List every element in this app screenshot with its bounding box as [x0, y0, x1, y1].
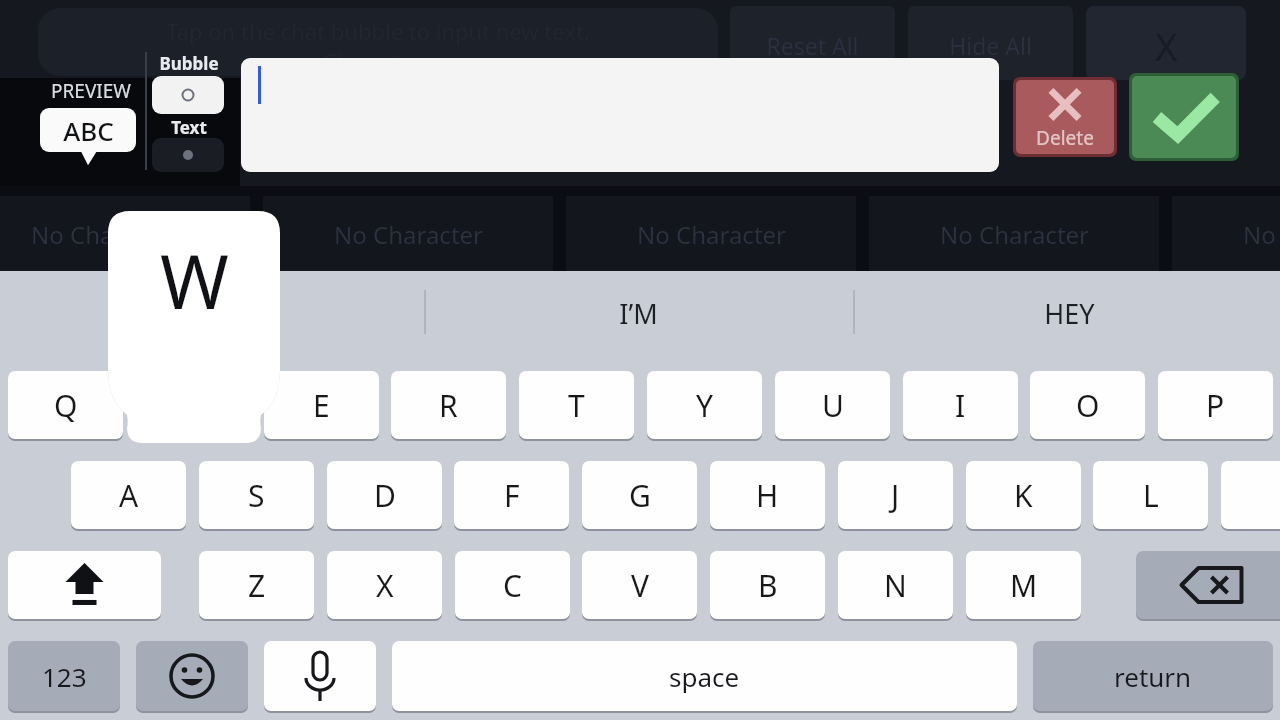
staticText: I [955, 385, 966, 426]
button[interactable]: S [199, 461, 314, 529]
button[interactable] [263, 196, 553, 274]
staticText: X [376, 565, 394, 606]
button[interactable]: P [1158, 371, 1273, 439]
button[interactable] [855, 279, 1280, 345]
button[interactable] [1172, 196, 1280, 274]
staticText: H [756, 475, 779, 516]
staticText: W [160, 230, 229, 331]
button[interactable]: H [710, 461, 825, 529]
button[interactable]: L [1093, 461, 1208, 529]
button[interactable] [730, 6, 895, 80]
staticText: No Character [334, 218, 483, 251]
button[interactable]: K [966, 461, 1081, 529]
button[interactable]: O [1030, 371, 1145, 439]
staticText: No Character [31, 218, 180, 251]
button[interactable]: J [838, 461, 953, 529]
button[interactable]: W [108, 225, 280, 335]
staticText: return [1114, 659, 1192, 694]
button[interactable]: Confirm [1132, 76, 1236, 158]
staticText: X [1155, 20, 1178, 68]
button[interactable] [424, 279, 853, 345]
button[interactable]: Z [199, 551, 314, 619]
button[interactable]: 123 [8, 641, 120, 711]
button[interactable] [0, 196, 250, 274]
staticText: D [374, 475, 396, 516]
button[interactable]: M [966, 551, 1081, 619]
staticText: C [503, 565, 522, 606]
button[interactable]: B [710, 551, 825, 619]
staticText: P [1206, 385, 1225, 426]
button[interactable]: Voice input [264, 641, 376, 711]
staticText: Characters [322, 46, 434, 76]
button[interactable] [869, 196, 1159, 274]
button[interactable]: I [903, 371, 1018, 439]
staticText: 123 [42, 659, 87, 694]
button[interactable]: E [264, 371, 379, 439]
button[interactable] [1016, 80, 1114, 154]
staticText: O [1076, 385, 1100, 426]
staticText: J [891, 475, 900, 516]
button[interactable] [40, 108, 136, 152]
button[interactable]: F [454, 461, 569, 529]
button[interactable]: V [582, 551, 697, 619]
button[interactable]: Emoji [136, 641, 248, 711]
button[interactable] [908, 6, 1073, 80]
button[interactable]: G [582, 461, 697, 529]
button[interactable]: X [327, 551, 442, 619]
button[interactable]: Q [8, 371, 123, 439]
staticText: Delete [1036, 125, 1094, 151]
staticText: S [248, 475, 265, 516]
button[interactable]: U [775, 371, 890, 439]
staticText: PREVIEW [51, 78, 131, 104]
button[interactable]: space [392, 641, 1017, 711]
button[interactable] [241, 58, 999, 172]
button[interactable]: Backspace [1136, 551, 1280, 619]
staticText: Y [696, 385, 713, 426]
staticText: HEY [1044, 295, 1095, 331]
staticText: N [884, 565, 907, 606]
staticText: T [568, 385, 585, 426]
staticText: ABC [63, 113, 114, 148]
staticText: Bubble [159, 52, 219, 75]
staticText: space [669, 659, 740, 694]
staticText: U [822, 385, 844, 426]
staticText: L [1143, 475, 1159, 516]
staticText: Reset All [766, 30, 859, 61]
staticText: Q [54, 385, 78, 426]
staticText: E [313, 385, 330, 426]
staticText: Text [171, 116, 207, 139]
staticText: F [504, 475, 520, 516]
staticText: No Character [1243, 218, 1280, 251]
staticText: G [629, 475, 651, 516]
button[interactable]: Y [647, 371, 762, 439]
button[interactable] [566, 196, 856, 274]
staticText: I’M [619, 295, 658, 331]
staticText: B [758, 565, 778, 606]
staticText: Hide All [949, 30, 1032, 61]
staticText: No Character [940, 218, 1089, 251]
button[interactable]: Close [1086, 6, 1246, 80]
staticText: A [119, 475, 139, 516]
button[interactable]: C [455, 551, 570, 619]
button[interactable]: Shift [8, 551, 161, 619]
button[interactable]: return [1033, 641, 1273, 711]
button[interactable]: N [838, 551, 953, 619]
button[interactable] [1221, 461, 1280, 529]
staticText: M [1010, 565, 1038, 606]
button[interactable]: D [327, 461, 442, 529]
button[interactable] [152, 76, 224, 114]
button[interactable] [152, 138, 224, 172]
button[interactable]: T [519, 371, 634, 439]
staticText: Z [248, 565, 266, 606]
staticText: V [631, 565, 649, 606]
staticText: R [439, 385, 458, 426]
button[interactable]: A [71, 461, 186, 529]
staticText: K [1014, 475, 1033, 516]
button[interactable]: R [391, 371, 506, 439]
staticText: No Character [637, 218, 786, 251]
